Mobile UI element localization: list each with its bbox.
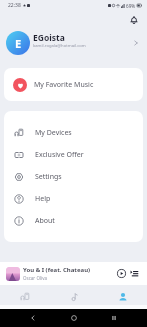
staticText: Help bbox=[35, 194, 51, 204]
staticText: EGoista bbox=[33, 32, 65, 44]
button[interactable]: Music bbox=[49, 285, 98, 309]
staticText: My Devices bbox=[35, 128, 72, 138]
button[interactable]: Profile bbox=[98, 285, 147, 309]
staticText: 22:38 bbox=[8, 2, 21, 9]
button[interactable]: Queue bbox=[128, 267, 141, 280]
staticText: 69% bbox=[126, 3, 136, 9]
staticText: E bbox=[15, 36, 22, 51]
button[interactable]: Exclusive Offer bbox=[4, 144, 143, 166]
button[interactable]: E bbox=[0, 29, 147, 57]
staticText: My Favorite Music bbox=[34, 80, 94, 90]
staticText: About bbox=[35, 216, 55, 226]
button[interactable]: Notifications bbox=[127, 13, 141, 27]
button[interactable]: Recents bbox=[106, 310, 122, 326]
button[interactable]: My Devices bbox=[4, 122, 143, 144]
staticText: Oscar Oliva bbox=[23, 275, 48, 281]
button[interactable]: My Favorite Music bbox=[4, 68, 143, 101]
staticText: kamil.rogala@hotmail.com bbox=[33, 43, 86, 49]
button[interactable]: You & I (feat. Chateau) bbox=[0, 262, 147, 285]
button[interactable]: Devices bbox=[0, 285, 49, 309]
button[interactable]: Help bbox=[4, 188, 143, 210]
staticText: Settings bbox=[35, 172, 62, 182]
button[interactable]: Settings bbox=[4, 166, 143, 188]
button[interactable]: Play bbox=[115, 267, 128, 280]
staticText: You & I (feat. Chateau) bbox=[23, 266, 91, 274]
staticText: Exclusive Offer bbox=[35, 150, 84, 160]
button[interactable]: Back bbox=[25, 310, 41, 326]
button[interactable]: Home bbox=[66, 310, 82, 326]
button[interactable]: About bbox=[4, 210, 143, 231]
